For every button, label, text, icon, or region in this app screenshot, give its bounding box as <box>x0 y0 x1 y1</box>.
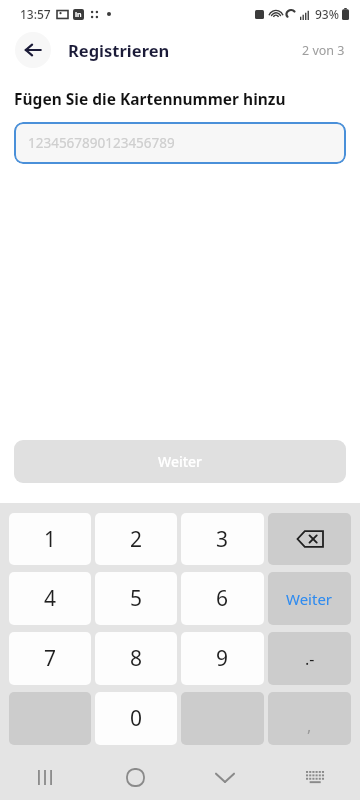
staticText: 0 <box>130 704 143 733</box>
staticText: Fügen Sie die Kartennummer hinzu <box>14 88 286 109</box>
button[interactable]: Weiter <box>14 440 346 483</box>
staticText: 6 <box>216 584 229 613</box>
button[interactable]: 1234567890123456789 <box>14 122 346 164</box>
staticText: 13:57 <box>20 6 51 22</box>
button[interactable]: Löschen <box>268 513 351 565</box>
button[interactable]: Startseite <box>90 755 180 800</box>
staticText: 5 <box>130 584 143 613</box>
staticText: Registrieren <box>68 39 170 61</box>
staticText: .- <box>305 648 315 670</box>
button[interactable]: Tastatur wechseln <box>270 755 360 800</box>
staticText: 4 <box>44 584 57 613</box>
staticText: 9 <box>216 644 229 673</box>
staticText: 2 <box>130 525 143 554</box>
staticText: 2 von 3 <box>302 42 345 59</box>
button[interactable]: 6 <box>181 572 264 625</box>
staticText: 1234567890123456789 <box>28 134 175 152</box>
button[interactable]: 1 <box>9 513 91 565</box>
staticText: , <box>307 715 312 737</box>
button[interactable]: Zurück <box>15 32 51 68</box>
button[interactable]: 8 <box>95 632 177 685</box>
staticText: 8 <box>130 644 143 673</box>
staticText: Weiter <box>286 589 333 609</box>
staticText: 93% <box>315 6 339 22</box>
button[interactable]: 0 <box>95 692 177 745</box>
button[interactable]: Tastatur ausblenden <box>180 755 270 800</box>
button[interactable]: Weiter <box>268 572 351 625</box>
staticText: 7 <box>44 644 57 673</box>
button[interactable]: 3 <box>181 513 264 565</box>
staticText: 1 <box>44 525 57 554</box>
button[interactable]: 9 <box>181 632 264 685</box>
staticText: Weiter <box>158 452 203 471</box>
button[interactable]: 7 <box>9 632 91 685</box>
button[interactable]: Letzte Apps <box>0 755 90 800</box>
button[interactable]: 2 <box>95 513 177 565</box>
button[interactable]: .- <box>268 632 351 685</box>
staticText: in <box>75 10 82 20</box>
staticText: 3 <box>216 525 229 554</box>
button[interactable]: 4 <box>9 572 91 625</box>
button[interactable]: 5 <box>95 572 177 625</box>
